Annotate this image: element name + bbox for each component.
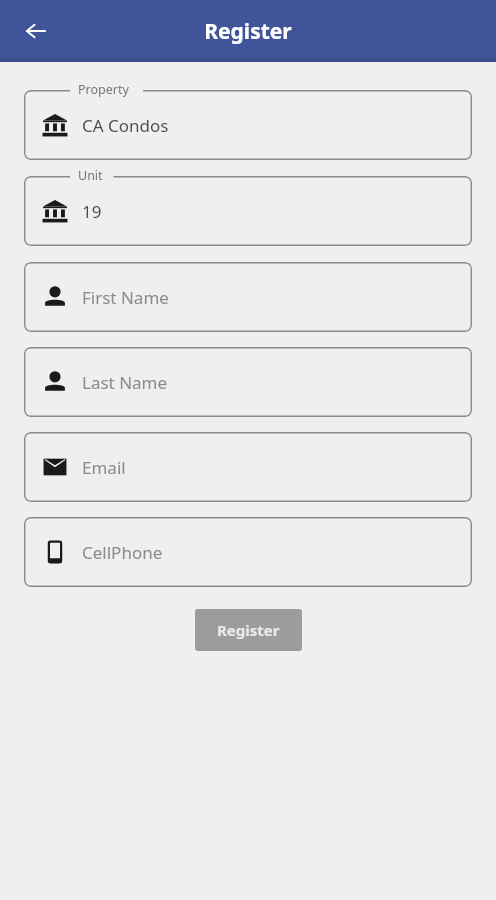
other: Cell phone — [42, 539, 68, 565]
button[interactable]: Property — [24, 90, 472, 160]
staticText: Register — [204, 17, 292, 46]
button[interactable]: Last name — [24, 347, 472, 417]
button[interactable]: First name — [24, 262, 472, 332]
staticText: Last Name — [82, 371, 168, 394]
other: Unit — [42, 198, 68, 224]
staticText: CA Condos — [82, 114, 169, 137]
button[interactable]: Unit — [24, 176, 472, 246]
other: Email — [42, 454, 68, 480]
staticText: Register — [217, 620, 280, 640]
other: First name — [42, 284, 68, 310]
staticText: CellPhone — [82, 541, 163, 564]
staticText: 19 — [82, 200, 102, 223]
button[interactable]: Back — [14, 9, 58, 53]
staticText: Unit — [78, 167, 103, 184]
staticText: Property — [78, 81, 129, 98]
button[interactable]: Cell phone — [24, 517, 472, 587]
other: Last name — [42, 369, 68, 395]
staticText: Email — [82, 456, 126, 479]
button[interactable]: Email — [24, 432, 472, 502]
button[interactable]: Register — [195, 609, 302, 651]
staticText: First Name — [82, 286, 169, 309]
other: Property — [42, 112, 68, 138]
